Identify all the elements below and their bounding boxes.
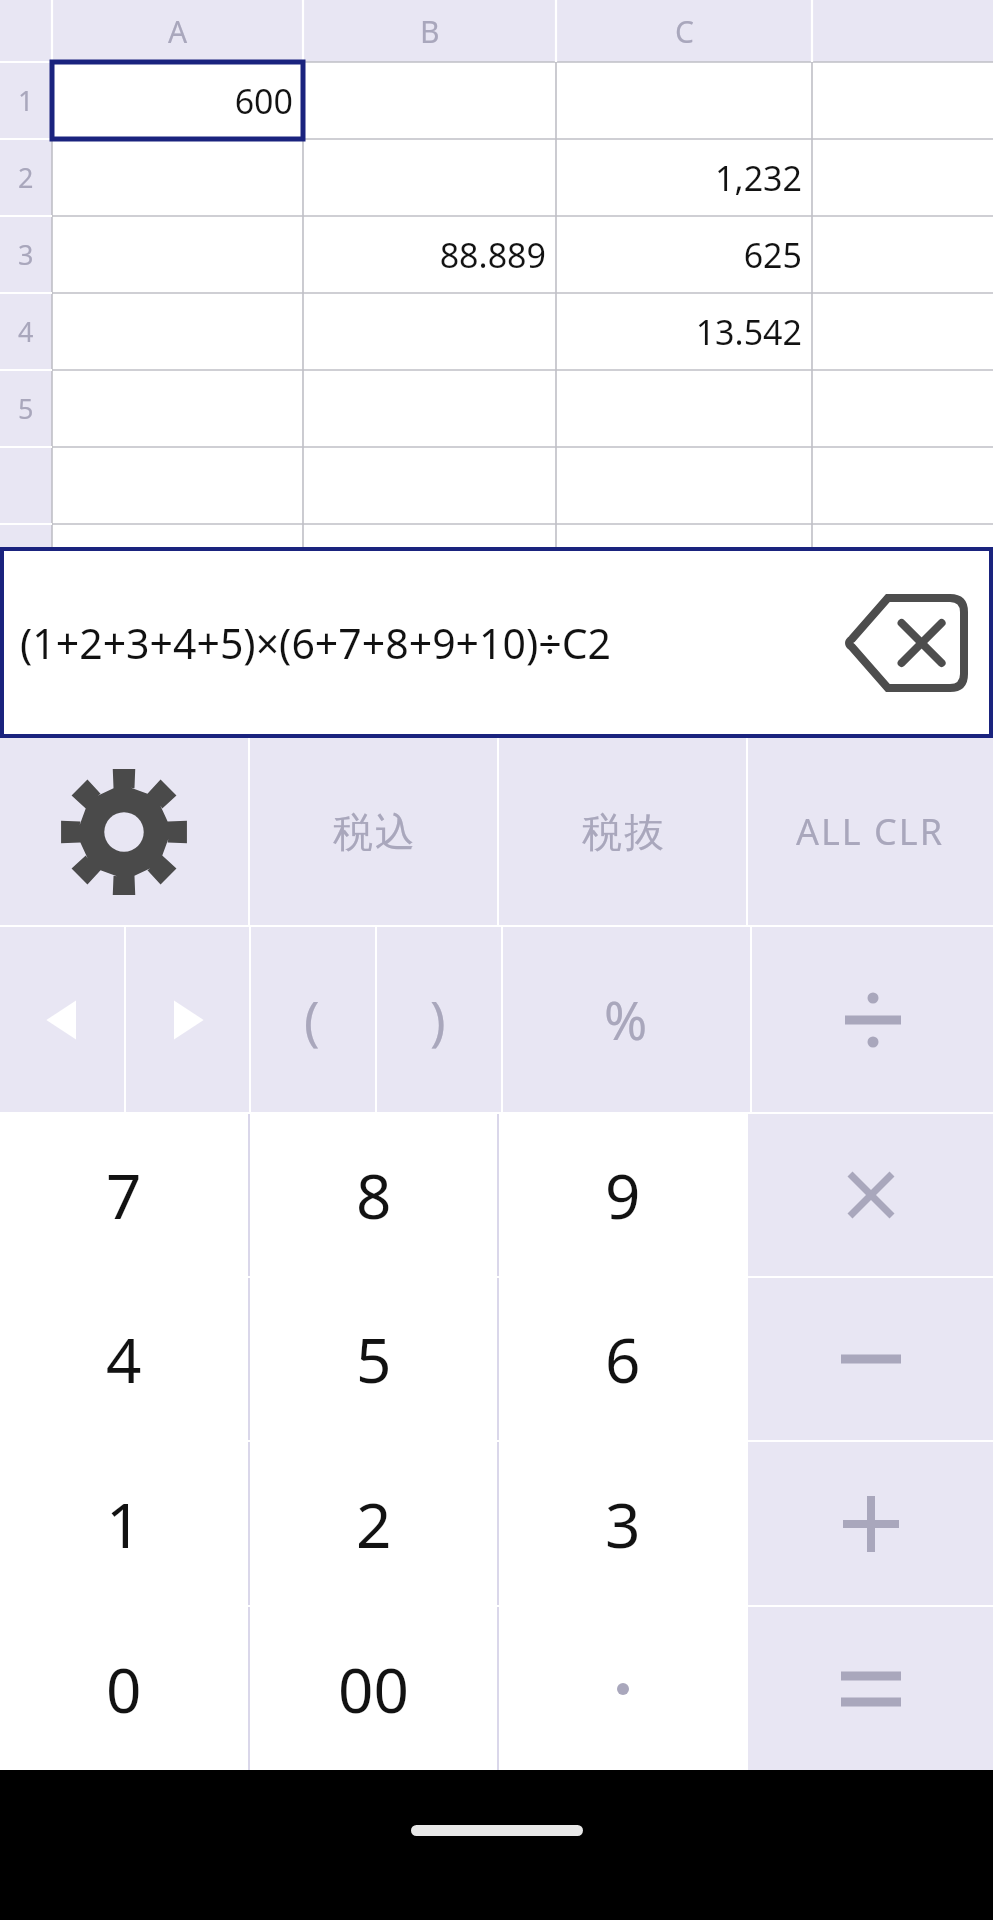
- staticText: 8: [356, 1153, 392, 1237]
- button[interactable]: 4: [0, 293, 52, 370]
- button[interactable]: Settings: [0, 738, 248, 925]
- button[interactable]: 3: [0, 216, 52, 293]
- button[interactable]: 税抜: [499, 738, 746, 925]
- staticText: (1+2+3+4+5)×(6+7+8+9+10)÷C2: [20, 615, 612, 671]
- button[interactable]: [499, 1607, 746, 1770]
- staticText: 9: [605, 1153, 641, 1237]
- button[interactable]: 600: [52, 62, 303, 139]
- staticText: 2: [18, 159, 34, 196]
- button[interactable]: C: [556, 0, 812, 62]
- staticText: 1,232: [715, 155, 802, 201]
- button[interactable]: B: [303, 0, 556, 62]
- staticText: 1: [18, 82, 34, 119]
- staticText: 税抜: [581, 807, 665, 857]
- staticText: C: [675, 11, 694, 52]
- button[interactable]: 9: [499, 1114, 746, 1276]
- staticText: 5: [18, 390, 34, 427]
- button[interactable]: 8: [250, 1114, 497, 1276]
- button[interactable]: 7: [0, 1114, 248, 1276]
- staticText: (: [304, 984, 322, 1055]
- staticText: 4: [106, 1317, 142, 1401]
- button[interactable]: %: [503, 927, 750, 1112]
- staticText: 5: [356, 1317, 392, 1401]
- button[interactable]: 1,232: [556, 139, 812, 216]
- staticText: 3: [605, 1482, 641, 1566]
- button[interactable]: Move left: [0, 927, 124, 1112]
- staticText: 4: [18, 313, 34, 350]
- button[interactable]: Subtract: [748, 1278, 993, 1440]
- staticText: ): [430, 984, 448, 1055]
- staticText: ALL CLR: [796, 807, 945, 856]
- staticText: 3: [18, 236, 34, 273]
- button[interactable]: 5: [0, 370, 52, 447]
- button[interactable]: 13.542: [556, 293, 812, 370]
- button[interactable]: 税込: [250, 738, 497, 925]
- staticText: 2: [356, 1482, 392, 1566]
- staticText: 625: [743, 232, 802, 278]
- button[interactable]: 625: [556, 216, 812, 293]
- button[interactable]: 0: [0, 1607, 248, 1770]
- button[interactable]: Move right: [126, 927, 249, 1112]
- button[interactable]: ): [377, 927, 501, 1112]
- button[interactable]: Multiply: [748, 1114, 993, 1276]
- button[interactable]: 00: [250, 1607, 497, 1770]
- staticText: 税込: [332, 807, 416, 857]
- staticText: A: [168, 11, 188, 52]
- button[interactable]: ALL CLR: [748, 738, 993, 925]
- button[interactable]: 3: [499, 1442, 746, 1605]
- button[interactable]: Equals: [748, 1607, 993, 1770]
- button[interactable]: Add: [748, 1442, 993, 1605]
- staticText: 600: [234, 78, 293, 124]
- button[interactable]: Backspace: [841, 591, 971, 695]
- button[interactable]: (: [251, 927, 375, 1112]
- button[interactable]: 5: [250, 1278, 497, 1440]
- button[interactable]: 1: [0, 1442, 248, 1605]
- button[interactable]: 88.889: [303, 216, 556, 293]
- staticText: 88.889: [439, 232, 546, 278]
- staticText: %: [604, 984, 650, 1055]
- button[interactable]: 6: [499, 1278, 746, 1440]
- staticText: 1: [106, 1482, 142, 1566]
- staticText: 0: [106, 1647, 142, 1731]
- button[interactable]: 4: [0, 1278, 248, 1440]
- button[interactable]: 1: [0, 62, 52, 139]
- button[interactable]: 2: [0, 139, 52, 216]
- staticText: B: [420, 11, 440, 52]
- staticText: 7: [106, 1153, 142, 1237]
- staticText: 6: [605, 1317, 641, 1401]
- staticText: 00: [338, 1647, 409, 1731]
- button[interactable]: Divide: [752, 927, 993, 1112]
- button[interactable]: 2: [250, 1442, 497, 1605]
- button[interactable]: A: [52, 0, 303, 62]
- staticText: 13.542: [695, 309, 802, 355]
